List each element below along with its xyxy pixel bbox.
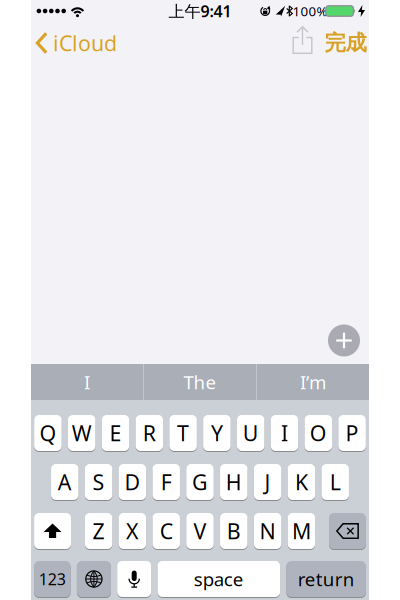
staticText: G [192, 468, 208, 496]
button[interactable]: C [152, 512, 180, 549]
button[interactable]: P [338, 414, 366, 451]
button[interactable]: Y [203, 414, 231, 451]
button[interactable]: space [157, 560, 280, 597]
button[interactable]: V [186, 512, 214, 549]
staticText: Z [93, 517, 105, 545]
staticText: T [177, 419, 189, 447]
staticText: space [194, 567, 244, 591]
button[interactable]: Shift [34, 512, 71, 549]
staticText: U [243, 419, 259, 447]
staticText: J [265, 468, 271, 496]
button[interactable]: J [254, 463, 281, 500]
button[interactable]: 完成 [324, 30, 366, 56]
button[interactable]: T [169, 414, 197, 451]
staticText: H [226, 468, 242, 496]
button[interactable]: M [288, 512, 315, 549]
button[interactable]: X [119, 512, 146, 549]
button[interactable]: A [51, 463, 79, 500]
staticText: Q [39, 419, 56, 447]
button[interactable]: G [186, 463, 214, 500]
button[interactable]: Z [85, 512, 112, 549]
staticText: I [281, 419, 288, 447]
button[interactable]: return [286, 560, 366, 597]
staticText: Y [211, 419, 223, 447]
button[interactable]: I [271, 414, 298, 451]
staticText: return [298, 567, 355, 591]
staticText: R [143, 419, 156, 447]
button[interactable]: U [237, 414, 264, 451]
button[interactable]: N [254, 512, 281, 549]
button[interactable]: Next keyboard [77, 560, 111, 597]
staticText: B [227, 517, 241, 545]
button[interactable]: Delete [329, 512, 366, 549]
staticText: S [93, 468, 105, 496]
staticText: V [193, 517, 206, 545]
staticText: I [84, 370, 90, 394]
staticText: 上午9:41 [168, 0, 231, 22]
button[interactable]: Add checklist [328, 324, 360, 356]
button[interactable]: W [68, 414, 95, 451]
staticText: A [58, 468, 72, 496]
staticText: P [346, 419, 359, 447]
staticText: M [292, 517, 311, 545]
button[interactable]: Q [34, 414, 62, 451]
button[interactable]: D [119, 463, 146, 500]
staticText: The [183, 370, 216, 394]
staticText: N [260, 517, 276, 545]
staticText: E [109, 419, 121, 447]
button[interactable]: 123 [34, 560, 71, 597]
button[interactable]: The [144, 364, 256, 400]
button[interactable]: O [305, 414, 332, 451]
staticText: F [161, 468, 172, 496]
staticText: L [330, 468, 341, 496]
staticText: O [310, 419, 327, 447]
button[interactable]: E [102, 414, 129, 451]
staticText: K [295, 468, 308, 496]
staticText: I’m [300, 370, 326, 394]
staticText: 100% [292, 2, 327, 20]
staticText: C [160, 517, 173, 545]
staticText: 123 [39, 568, 66, 590]
button[interactable]: I’m [257, 364, 369, 400]
button[interactable]: B [220, 512, 248, 549]
button[interactable]: Share [292, 26, 312, 54]
button[interactable]: K [288, 463, 315, 500]
button[interactable]: Dictate [117, 560, 151, 597]
button[interactable]: iCloud [35, 29, 117, 57]
button[interactable]: H [220, 463, 248, 500]
button[interactable]: L [321, 463, 349, 500]
button[interactable]: S [85, 463, 112, 500]
staticText: iCloud [53, 29, 117, 57]
staticText: X [126, 517, 139, 545]
staticText: D [124, 468, 140, 496]
button[interactable]: I [31, 364, 143, 400]
button[interactable]: F [152, 463, 180, 500]
staticText: W [72, 419, 92, 447]
staticText: 完成 [324, 30, 366, 56]
button[interactable]: R [136, 414, 163, 451]
